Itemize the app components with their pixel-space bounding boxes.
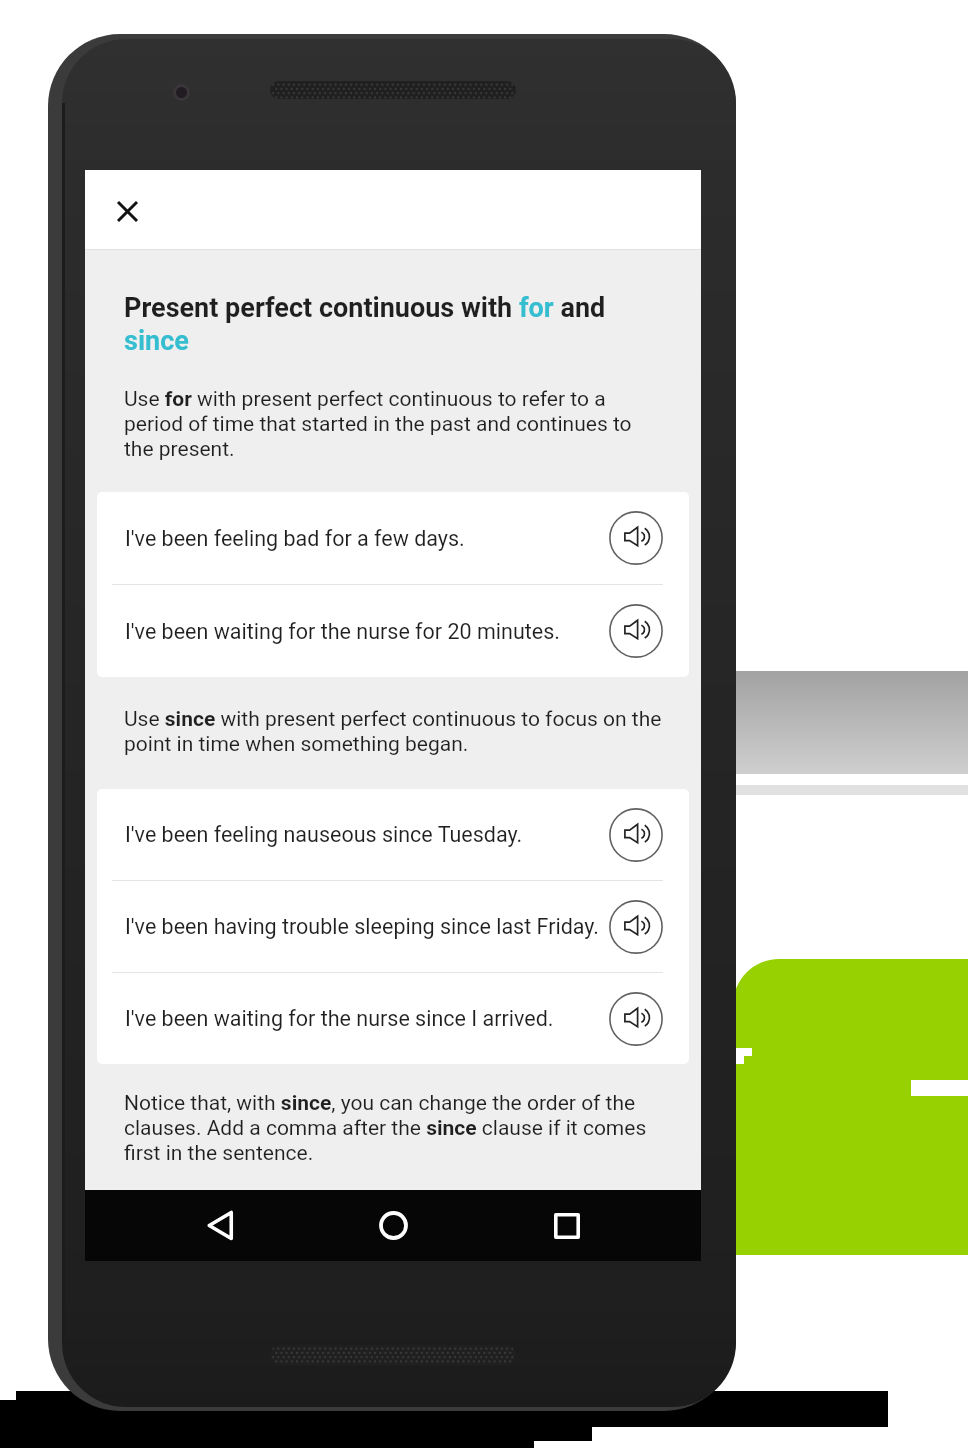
button[interactable]: Play audio xyxy=(609,992,663,1046)
button[interactable]: Play audio xyxy=(609,900,663,954)
staticText: I've been waiting for the nurse for 20 m… xyxy=(125,619,635,644)
staticText: I've been feeling bad for a few days. xyxy=(125,526,635,551)
button[interactable]: I've been waiting for the nurse for 20 m… xyxy=(97,585,689,677)
button[interactable]: Home xyxy=(307,1190,480,1261)
button[interactable]: I've been feeling bad for a few days. xyxy=(97,492,689,584)
staticText: Present perfect continuous with for and … xyxy=(124,292,664,357)
staticText: Use for with present perfect continuous … xyxy=(124,387,664,462)
button[interactable]: Close xyxy=(85,170,167,249)
button[interactable]: Play audio xyxy=(609,808,663,862)
button[interactable]: Play audio xyxy=(609,604,663,658)
staticText: I've been waiting for the nurse since I … xyxy=(125,1006,635,1031)
staticText: Use since with present perfect continuou… xyxy=(124,707,664,757)
button[interactable]: Back xyxy=(133,1190,307,1261)
button[interactable]: Play audio xyxy=(609,511,663,565)
staticText: I've been having trouble sleeping since … xyxy=(125,914,635,939)
button[interactable]: I've been waiting for the nurse since I … xyxy=(97,973,689,1064)
button[interactable]: I've been feeling nauseous since Tuesday… xyxy=(97,789,689,880)
staticText: I've been feeling nauseous since Tuesday… xyxy=(125,822,635,847)
button[interactable]: I've been having trouble sleeping since … xyxy=(97,881,689,972)
staticText: Notice that, with since, you can change … xyxy=(124,1091,664,1166)
button[interactable]: Recent apps xyxy=(480,1190,653,1261)
